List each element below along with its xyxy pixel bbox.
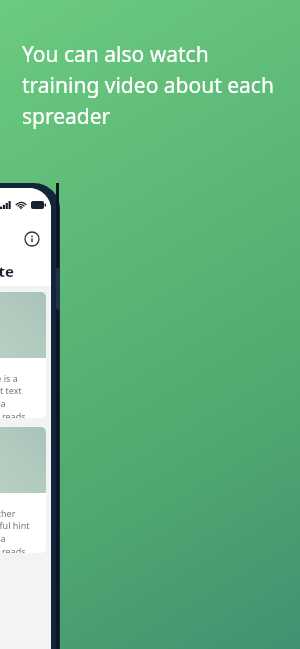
- staticText: user reads before the motor: [0, 410, 40, 418]
- button[interactable]: Here is a short text that a: [0, 292, 46, 418]
- staticText: Another helpful hint that a: [0, 507, 40, 545]
- staticText: You can also watch training video about …: [22, 40, 282, 130]
- staticText: Here is a short text that a: [0, 372, 40, 410]
- staticText: Calibrate: [0, 261, 14, 281]
- staticText: user reads before the motor: [0, 545, 40, 553]
- button[interactable]: Another helpful hint that a: [0, 427, 46, 553]
- button[interactable]: Information: [19, 226, 45, 252]
